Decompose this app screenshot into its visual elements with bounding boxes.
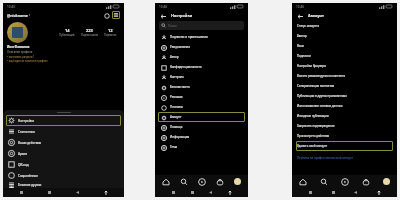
staticText: Просмотреть действия (297, 134, 330, 138)
button[interactable]: Add (103, 12, 110, 19)
staticText: Реклама (170, 95, 183, 99)
button[interactable]: Home (160, 176, 171, 187)
button[interactable]: QR-код (8, 159, 119, 170)
staticText: Публикаций (59, 33, 75, 37)
button[interactable]: Keyboard (101, 188, 110, 197)
button[interactable]: Avatar (7, 22, 28, 43)
button[interactable]: Home (297, 176, 308, 187)
button[interactable]: Back (296, 12, 304, 20)
button[interactable]: Profile (232, 176, 243, 187)
button[interactable]: Back (159, 12, 167, 20)
button[interactable]: 12 (104, 28, 117, 37)
button[interactable]: Безопасность (160, 82, 243, 92)
staticText: @nickname (7, 13, 28, 18)
staticText: Статус аккаунта (297, 24, 320, 28)
button[interactable]: Использование сотовых данных (297, 101, 392, 111)
staticText: 10:46 (159, 5, 168, 9)
staticText: Близкие друзья (18, 183, 42, 187)
button[interactable]: Поиск (161, 21, 242, 30)
staticText: Аккаунт (170, 115, 182, 119)
button[interactable]: Back (351, 188, 360, 197)
button[interactable]: Reels (196, 176, 207, 187)
button[interactable]: Home button (45, 188, 54, 197)
button[interactable]: Аккаунт (160, 112, 243, 122)
button[interactable]: Подписки (297, 51, 392, 61)
button[interactable]: Search (318, 176, 329, 187)
staticText: Архив (18, 152, 28, 156)
staticText: Контроль (170, 75, 184, 79)
button[interactable]: Recents (169, 188, 178, 197)
staticText: Описание профиля (7, 50, 33, 54)
button[interactable]: 223 (81, 28, 98, 37)
button[interactable]: Реклама (160, 92, 243, 102)
button[interactable]: Публикации в других приложениях (297, 91, 392, 101)
staticText: Настройки браузера (297, 64, 326, 68)
button[interactable]: Настройки браузера (297, 61, 392, 71)
button[interactable]: Платежи (160, 102, 243, 112)
staticText: Конфиденциальность (170, 65, 202, 69)
button[interactable]: Recents (17, 188, 26, 197)
button[interactable]: Ваши действия (8, 137, 119, 148)
button[interactable]: Близкие друзья (8, 181, 119, 188)
button[interactable]: Keyboard (225, 188, 234, 197)
button[interactable]: Shop (360, 176, 371, 187)
button[interactable]: Настройки (8, 115, 119, 126)
staticText: Тема (170, 145, 178, 149)
button[interactable]: Просмотреть действия (297, 131, 392, 141)
button[interactable]: Home button (188, 188, 197, 197)
button[interactable]: Конфиденциальность (160, 62, 243, 72)
button[interactable]: Back (73, 188, 82, 197)
staticText: Исходные публикации (297, 114, 329, 118)
button[interactable]: Подписки и приглашения (160, 32, 243, 42)
button[interactable]: Reels (339, 176, 350, 187)
staticText: Имя Фамилия (7, 45, 30, 49)
staticText: Настройки (171, 13, 193, 18)
staticText: ▾ (28, 13, 31, 17)
staticText: Информация (170, 135, 190, 139)
button[interactable]: Shop (214, 176, 225, 187)
staticText: Подписки и приглашения (170, 35, 208, 39)
staticText: Публикации в других приложениях (297, 94, 347, 98)
button[interactable]: Перейти на профессиональный аккаунт (297, 153, 392, 162)
button[interactable]: Статистика (8, 126, 119, 137)
staticText: Синхронизация контактов (297, 84, 335, 88)
button[interactable]: Recents (306, 188, 315, 197)
staticText: Уведомления (170, 45, 190, 49)
button[interactable]: Аватар (297, 31, 392, 41)
staticText: Аккаунт (308, 13, 325, 18)
button[interactable]: Search (178, 176, 189, 187)
button[interactable]: Вместо рекомендуемого контента (297, 71, 392, 81)
staticText: Платежи (170, 105, 183, 109)
staticText: 10:45 (7, 5, 16, 9)
button[interactable]: Запросить подтверждение (297, 121, 392, 131)
button[interactable]: Сохранённое (8, 170, 119, 181)
button[interactable]: Keyboard (374, 188, 383, 197)
button[interactable]: Тема (160, 142, 243, 152)
button[interactable]: Контроль (160, 72, 243, 82)
button[interactable]: Back (206, 188, 215, 197)
staticText: Поиск (168, 24, 177, 28)
button[interactable]: Автор (160, 52, 243, 62)
staticText: Помощь (170, 125, 183, 129)
button[interactable]: Статус аккаунта (297, 21, 392, 31)
button[interactable]: Помощь (160, 122, 243, 132)
button[interactable]: Home button (329, 188, 338, 197)
button[interactable]: Информация (160, 132, 243, 142)
button[interactable]: Profile (381, 176, 392, 187)
button[interactable]: 14 (59, 28, 75, 37)
button[interactable]: Уведомления (160, 42, 243, 52)
staticText: Удалить свой аккаунт (297, 144, 328, 148)
button[interactable]: Архив (8, 148, 119, 159)
staticText: Статистика (18, 130, 35, 134)
staticText: Аватар (297, 34, 307, 38)
staticText: Ваши действия (18, 141, 42, 145)
staticText: 14 (65, 28, 70, 33)
staticText: 10:46 (296, 5, 305, 9)
button[interactable]: Исходные публикации (297, 111, 392, 121)
button[interactable]: Язык (297, 41, 392, 51)
staticText: 12 (108, 28, 113, 33)
button[interactable]: Удалить свой аккаунт (297, 141, 392, 151)
staticText: Подписки (297, 54, 311, 58)
button[interactable]: Синхронизация контактов (297, 81, 392, 91)
button[interactable]: Menu (112, 11, 120, 19)
